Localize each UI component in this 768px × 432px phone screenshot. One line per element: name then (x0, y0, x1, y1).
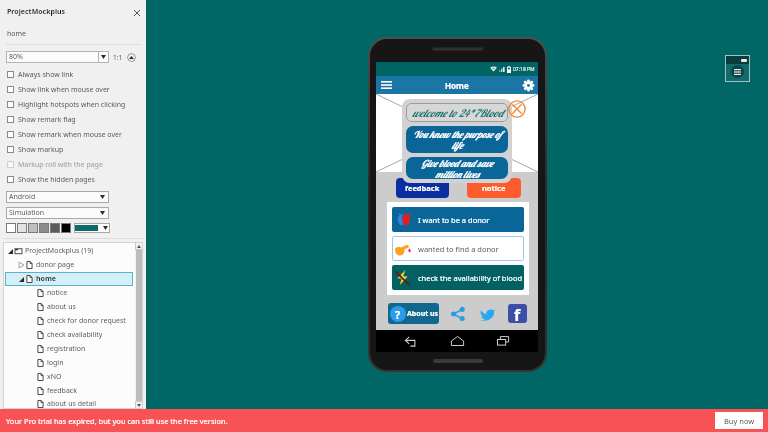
staticText: registration (47, 344, 86, 354)
staticText: f (514, 304, 521, 323)
staticText: ProjectMockplus (19) (25, 246, 94, 256)
staticText: Buy now (724, 416, 755, 426)
button[interactable]: Simulation (6, 207, 109, 219)
staticText: login (47, 358, 64, 368)
button[interactable]: Always show link (7, 67, 146, 82)
staticText: home (7, 29, 27, 39)
button[interactable]: about us (5, 300, 133, 314)
staticText: home (36, 274, 56, 284)
button[interactable] (74, 223, 110, 233)
staticText: donor page (36, 260, 75, 270)
button[interactable]: home (5, 272, 133, 286)
staticText: Simulation (9, 208, 45, 218)
button[interactable]: Buy now (715, 412, 763, 429)
button[interactable] (61, 223, 71, 233)
staticText: ? (395, 307, 401, 322)
button[interactable]: notice (5, 286, 133, 300)
staticText: feedback (405, 183, 440, 193)
button[interactable]: Twitter (478, 304, 498, 324)
staticText: Your Pro trial has expired, but you can … (6, 416, 228, 426)
staticText: I want to be a donor (418, 215, 490, 225)
button[interactable]: Close (131, 7, 142, 18)
button[interactable]: Share (448, 304, 468, 324)
button[interactable]: Home (446, 330, 468, 352)
staticText: notice (47, 288, 68, 298)
button[interactable]: wanted to find a donor (392, 236, 524, 261)
button[interactable]: Collapse (127, 53, 136, 62)
staticText: check for donor request (47, 316, 126, 326)
button[interactable]: Toggle panel (726, 56, 749, 81)
staticText: About us (407, 309, 439, 319)
button[interactable]: Highlight hotspots when clicking (7, 97, 146, 112)
button[interactable]: Show markup (7, 142, 146, 157)
button[interactable] (17, 223, 27, 233)
button[interactable]: Scroll up (135, 242, 143, 250)
button[interactable]: notice (467, 178, 521, 198)
button[interactable]: donor page (5, 258, 133, 272)
staticText: 1:1 (113, 53, 123, 62)
staticText: Show markup (18, 145, 64, 155)
button[interactable]: ? (388, 303, 439, 324)
button[interactable]: Android (6, 191, 109, 203)
staticText: Show the hidden pages (18, 175, 95, 185)
staticText: ProjectMockplus (7, 7, 66, 17)
button[interactable]: Show remark when mouse over (7, 127, 146, 142)
staticText: 80% (9, 52, 23, 62)
button[interactable]: check availability (5, 328, 133, 342)
button[interactable]: Give blood and save million lives (406, 157, 508, 179)
button[interactable]: I want to be a donor (392, 207, 524, 232)
staticText: Android (9, 192, 36, 202)
button[interactable]: Facebook (508, 304, 527, 323)
button[interactable]: feedback (5, 384, 133, 398)
button[interactable]: Markup roll with the page (7, 157, 146, 172)
staticText: Show remark flag (18, 115, 76, 125)
staticText: Show link when mouse over (18, 85, 110, 95)
button[interactable]: Show the hidden pages (7, 172, 146, 187)
staticText: welcome to 24*7Blood (412, 106, 503, 119)
staticText: 07:18 PM (513, 66, 535, 73)
staticText: Always show link (18, 70, 74, 80)
staticText: Show remark when mouse over (18, 130, 122, 140)
button[interactable]: Show link when mouse over (7, 82, 146, 97)
button[interactable]: login (5, 356, 133, 370)
button[interactable]: 80% (6, 51, 109, 63)
staticText: Markup roll with the page (18, 160, 103, 170)
button[interactable]: check the availability of blood (392, 265, 524, 290)
button[interactable]: You know the purpose of life (406, 126, 508, 153)
button[interactable]: registration (5, 342, 133, 356)
button[interactable]: xNO (5, 370, 133, 384)
button[interactable]: ProjectMockplus (19) (5, 244, 133, 258)
staticText: check the availability of blood (418, 273, 523, 283)
button[interactable]: Show remark flag (7, 112, 146, 127)
button[interactable]: Recents (492, 330, 514, 352)
button[interactable]: Menu (376, 76, 396, 94)
staticText: notice (482, 183, 506, 193)
staticText: about us (47, 302, 76, 312)
staticText: feedback (47, 386, 77, 396)
button[interactable] (6, 223, 16, 233)
button[interactable]: about us detail (5, 398, 133, 409)
button[interactable]: Back (400, 330, 422, 352)
staticText: check availability (47, 330, 103, 340)
button[interactable] (50, 223, 60, 233)
button[interactable]: Close banner (508, 100, 526, 118)
staticText: You know the purpose of life (411, 128, 503, 151)
button[interactable]: feedback (396, 178, 449, 198)
button[interactable]: check for donor request (5, 314, 133, 328)
staticText: Give blood and save million lives (411, 157, 503, 179)
staticText: about us detail (47, 399, 96, 409)
button[interactable] (39, 223, 49, 233)
button[interactable]: welcome to 24*7Blood (406, 103, 508, 122)
button[interactable] (28, 223, 38, 233)
button[interactable]: Scroll down (135, 401, 143, 409)
staticText: Highlight hotspots when clicking (18, 100, 126, 110)
button[interactable]: Settings (518, 76, 538, 94)
staticText: xNO (47, 372, 62, 382)
staticText: wanted to find a donor (418, 244, 499, 254)
staticText: Home (445, 80, 469, 91)
